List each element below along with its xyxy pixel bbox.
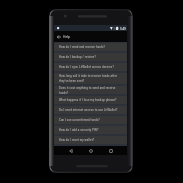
staticText: Does it cost anything to send and receiv…	[59, 86, 125, 94]
button[interactable]: Can I use unconfirmed funds?	[54, 116, 127, 124]
staticText: How do I send and receive funds?	[59, 45, 106, 49]
staticText: Help	[63, 35, 70, 39]
button[interactable]: Does it cost anything to send and receiv…	[54, 86, 127, 94]
staticText: How long will it take to receive funds a…	[59, 74, 118, 83]
button[interactable]: How do I add a security PIN?	[54, 126, 127, 134]
button[interactable]: How do I send and receive funds?	[54, 43, 127, 51]
button[interactable]: Recents	[108, 148, 114, 154]
button[interactable]: What happens if I lose my backup phrase?	[54, 96, 127, 104]
button[interactable]: Home	[88, 148, 94, 154]
button[interactable]: How long will it take to receive funds a…	[54, 73, 127, 84]
staticText: Can I use unconfirmed funds?	[59, 118, 100, 122]
button[interactable]: Do I need internet access to use LitWall…	[54, 106, 127, 114]
staticText: Do I need internet access to use LitWall…	[59, 108, 118, 112]
button[interactable]: Back	[57, 35, 61, 39]
staticText: How do I sync LitWallet across devices?	[59, 65, 114, 69]
button[interactable]: How do I backup / restore?	[54, 53, 127, 61]
button[interactable]: How do I reset my wallet?	[54, 136, 127, 144]
button[interactable]: How do I sync LitWallet across devices?	[54, 63, 127, 71]
staticText: What happens if I lose my backup phrase?	[59, 98, 117, 102]
staticText: How do I backup / restore?	[59, 55, 96, 59]
staticText: How do I reset my wallet?	[59, 138, 95, 142]
staticText: How do I add a security PIN?	[59, 128, 99, 132]
staticText: 5:49	[120, 27, 126, 31]
button[interactable]: Back	[68, 148, 74, 154]
button[interactable]: Back	[54, 31, 127, 42]
